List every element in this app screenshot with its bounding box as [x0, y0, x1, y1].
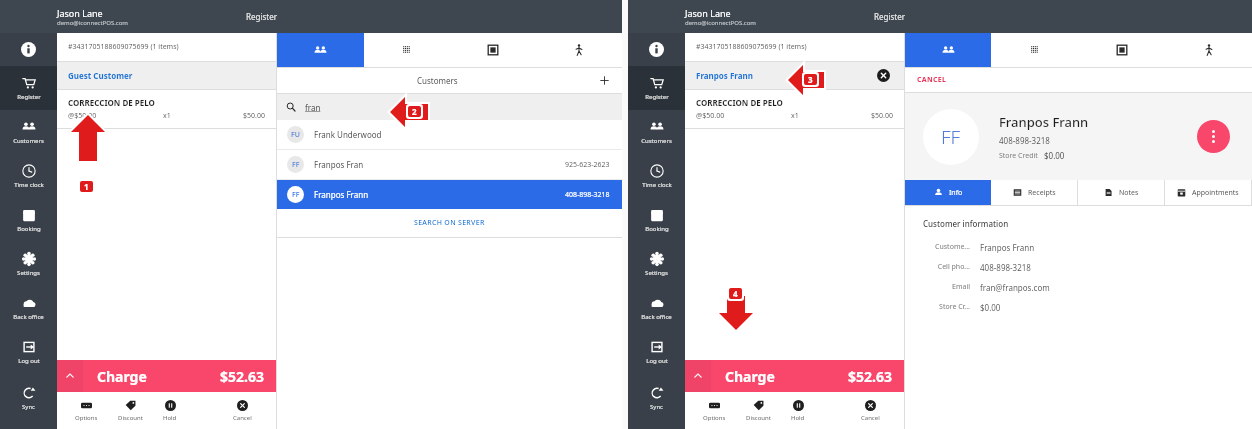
staticText: Discount — [118, 414, 143, 422]
button[interactable]: Booking — [628, 198, 685, 242]
button[interactable]: Settings — [0, 242, 57, 286]
staticText: Store Credit — [999, 151, 1038, 161]
staticText: Options — [703, 414, 726, 422]
staticText: Back office — [641, 313, 672, 321]
button[interactable]: Register — [628, 66, 685, 110]
button[interactable]: FF — [277, 150, 622, 179]
button[interactable]: Hold — [789, 400, 807, 422]
button[interactable]: Walk-in tab — [1165, 33, 1252, 67]
button[interactable]: SEARCH ON SERVER — [277, 209, 622, 237]
button[interactable]: Discount — [744, 400, 773, 422]
staticText: Franpos Frann — [696, 70, 753, 81]
staticText: FF — [292, 160, 300, 170]
button[interactable]: Booking — [0, 198, 57, 242]
staticText: 408-898-3218 — [999, 135, 1050, 146]
staticText: demo@iconnectPOS.com — [685, 19, 756, 27]
button[interactable]: Time clock — [628, 154, 685, 198]
staticText: $50.00 — [243, 111, 265, 121]
button[interactable]: Register — [0, 66, 57, 110]
button[interactable]: Guest Customer — [57, 62, 276, 89]
button[interactable]: Sync — [628, 376, 685, 420]
staticText: 408-898-3218 — [980, 262, 1031, 273]
staticText: Register — [17, 93, 41, 101]
button[interactable]: Charge — [57, 360, 276, 392]
button[interactable]: Log out — [0, 330, 57, 374]
staticText: Booking — [645, 225, 669, 233]
staticText: Cancel — [861, 414, 880, 422]
button[interactable]: CORRECCION DE PELO — [685, 90, 904, 128]
staticText: @$50.00 — [696, 111, 725, 121]
button[interactable]: Discount — [116, 400, 145, 422]
button[interactable]: Time clock — [0, 154, 57, 198]
staticText: Jason Lane — [685, 7, 731, 19]
staticText: Log out — [18, 357, 40, 365]
button[interactable]: FF — [277, 180, 622, 209]
staticText: Notes — [1119, 188, 1139, 198]
button[interactable]: Back office — [0, 286, 57, 330]
staticText: Customers — [417, 75, 458, 86]
staticText: Hold — [791, 414, 805, 422]
staticText: SEARCH ON SERVER — [414, 218, 485, 228]
button[interactable]: Screen tab — [450, 33, 536, 67]
staticText: Log out — [646, 357, 668, 365]
staticText: Hold — [163, 414, 177, 422]
staticText: Customers — [13, 137, 44, 145]
staticText: 3 — [808, 74, 813, 85]
staticText: Charge — [725, 367, 775, 386]
button[interactable]: Remove customer — [877, 69, 890, 82]
button[interactable]: Sync — [0, 376, 57, 420]
staticText: Time clock — [14, 181, 44, 189]
button[interactable]: Hold — [161, 400, 179, 422]
staticText: 408-898-3218 — [565, 190, 610, 200]
button[interactable]: Cancel — [859, 400, 882, 422]
button[interactable]: Customers tab — [905, 33, 991, 67]
staticText: Jason Lane — [57, 7, 103, 19]
button[interactable]: Products tab — [364, 33, 450, 67]
staticText: $0.00 — [980, 302, 1001, 313]
button[interactable]: Screen tab — [1078, 33, 1165, 67]
staticText: Time clock — [642, 181, 672, 189]
button[interactable]: Notes — [1078, 180, 1164, 205]
staticText: 2 — [412, 106, 417, 117]
staticText: $52.63 — [848, 367, 892, 386]
button[interactable]: Customers tab — [277, 33, 364, 67]
button[interactable]: Log out — [628, 330, 685, 374]
staticText: Sync — [650, 403, 663, 411]
staticText: FF — [941, 124, 961, 150]
staticText: Guest Customer — [68, 70, 133, 81]
staticText: Receipts — [1028, 188, 1056, 198]
button[interactable]: Settings — [628, 242, 685, 286]
button[interactable]: Add customer — [599, 75, 610, 86]
button[interactable]: Appointments — [1165, 180, 1251, 205]
staticText: Booking — [17, 225, 41, 233]
staticText: Custome... — [923, 242, 970, 252]
button[interactable]: Back office — [628, 286, 685, 330]
button[interactable]: fran — [277, 94, 622, 120]
button[interactable]: Walk-in tab — [536, 33, 622, 67]
button[interactable]: Cancel — [231, 400, 254, 422]
staticText: CORRECCION DE PELO — [696, 97, 783, 108]
staticText: CANCEL — [917, 75, 947, 85]
button[interactable]: Charge — [685, 360, 904, 392]
button[interactable]: Options — [73, 400, 100, 422]
button[interactable]: FU — [277, 120, 622, 149]
staticText: Back office — [13, 313, 44, 321]
staticText: $50.00 — [871, 111, 893, 121]
staticText: Register — [645, 93, 669, 101]
button[interactable]: CANCEL — [905, 68, 1252, 92]
button[interactable]: Info — [905, 180, 991, 205]
button[interactable]: More options — [1197, 120, 1230, 153]
button[interactable]: Customers — [628, 110, 685, 154]
button[interactable]: Options — [701, 400, 728, 422]
staticText: Franpos Fran — [314, 159, 364, 170]
staticText: Franpos Frann — [314, 189, 369, 200]
button[interactable]: Products tab — [991, 33, 1078, 67]
button[interactable]: Receipts — [991, 180, 1077, 205]
staticText: Customer information — [923, 218, 1009, 229]
button[interactable]: CORRECCION DE PELO — [57, 90, 276, 128]
staticText: CORRECCION DE PELO — [68, 97, 155, 108]
staticText: fran — [305, 102, 321, 113]
staticText: fran@franpos.com — [980, 282, 1050, 293]
button[interactable]: Franpos Frann — [685, 62, 904, 89]
button[interactable]: Customers — [0, 110, 57, 154]
